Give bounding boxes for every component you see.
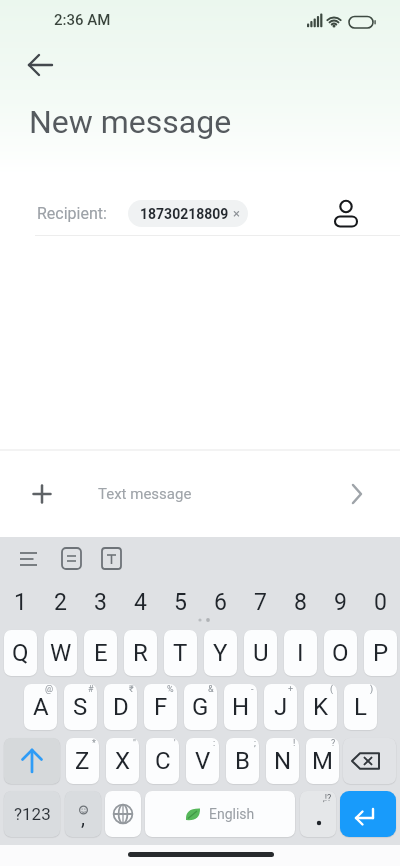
button[interactable]: Q <box>4 630 37 676</box>
button[interactable]: R <box>124 630 157 676</box>
button[interactable] <box>54 544 88 574</box>
button[interactable]: 9 <box>320 581 360 623</box>
button[interactable]: A <box>24 684 57 730</box>
button[interactable]: T <box>164 630 197 676</box>
staticText: @ <box>45 684 54 695</box>
button[interactable]: 2 <box>40 581 80 623</box>
staticText: R <box>133 639 148 667</box>
button[interactable]: M <box>306 738 339 784</box>
button[interactable]: W <box>44 630 77 676</box>
button[interactable]: B <box>226 738 259 784</box>
button[interactable]: N <box>266 738 299 784</box>
staticText: D <box>113 693 129 721</box>
staticText: Recipient: <box>37 204 107 223</box>
button[interactable]: V <box>186 738 219 784</box>
staticText: New message <box>29 103 232 141</box>
button[interactable]: I <box>284 630 317 676</box>
button[interactable]: ?123 <box>4 791 60 837</box>
button[interactable] <box>328 196 364 232</box>
staticText: S <box>73 693 88 721</box>
button[interactable]: K <box>304 684 337 730</box>
staticText: % <box>167 684 174 695</box>
button[interactable]: 8 <box>280 581 320 623</box>
staticText: 1 <box>14 589 27 616</box>
button[interactable]: 4 <box>120 581 160 623</box>
staticText: : <box>213 738 216 749</box>
staticText: ? <box>331 738 336 749</box>
button[interactable]: J <box>264 684 297 730</box>
button[interactable]: G <box>184 684 217 730</box>
staticText: T <box>173 639 188 667</box>
staticText: H <box>232 693 250 721</box>
staticText: * <box>92 738 96 749</box>
button[interactable] <box>105 791 141 837</box>
staticText: ?123 <box>14 804 51 824</box>
staticText: 18730218809 <box>140 206 229 222</box>
staticText: English <box>209 806 255 822</box>
button[interactable]: 1 <box>0 581 40 623</box>
staticText: G <box>192 693 209 721</box>
button[interactable]: O <box>324 630 357 676</box>
button[interactable]: , <box>65 791 101 837</box>
button[interactable]: Text message <box>90 478 330 510</box>
staticText: P <box>373 639 389 667</box>
button[interactable]: 5 <box>160 581 200 623</box>
button[interactable] <box>4 738 60 784</box>
button[interactable] <box>12 544 46 574</box>
staticText: J <box>274 693 288 721</box>
button[interactable]: P <box>364 630 397 676</box>
button[interactable] <box>343 738 396 784</box>
staticText: 9 <box>334 589 347 616</box>
button[interactable]: L <box>344 684 377 730</box>
staticText: × <box>233 206 240 221</box>
button[interactable]: Z <box>66 738 99 784</box>
staticText: L <box>354 693 367 721</box>
staticText: # <box>88 684 94 695</box>
staticText: F <box>154 693 168 721</box>
staticText: ₹ <box>129 684 134 695</box>
button[interactable]: 7 <box>240 581 280 623</box>
staticText: B <box>235 747 250 775</box>
button[interactable]: 3 <box>80 581 120 623</box>
staticText: , <box>81 806 85 829</box>
staticText: Text message <box>98 485 192 503</box>
button[interactable]: D <box>104 684 137 730</box>
button[interactable]: F <box>144 684 177 730</box>
button[interactable] <box>16 46 64 84</box>
staticText: U <box>253 639 269 667</box>
staticText: - <box>251 684 254 695</box>
staticText: 6 <box>214 589 227 616</box>
staticText: Z <box>75 747 90 775</box>
button[interactable] <box>94 544 128 574</box>
staticText: K <box>313 693 329 721</box>
staticText: E <box>94 639 108 667</box>
button[interactable]: E <box>84 630 117 676</box>
button[interactable]: English <box>145 791 295 837</box>
button[interactable]: 18730218809 <box>128 200 248 227</box>
button[interactable]: Y <box>204 630 237 676</box>
button[interactable]: 6 <box>200 581 240 623</box>
button[interactable]: X <box>106 738 139 784</box>
button[interactable] <box>340 791 396 837</box>
button[interactable]: C <box>146 738 179 784</box>
staticText: 2 <box>54 589 67 616</box>
staticText: 2:36 AM <box>54 11 111 29</box>
staticText: + <box>288 684 294 695</box>
staticText: O <box>332 639 349 667</box>
staticText: C <box>155 747 171 775</box>
button[interactable] <box>340 478 374 510</box>
staticText: 8 <box>294 589 307 616</box>
staticText: 0 <box>374 589 387 616</box>
button[interactable]: 0 <box>360 581 400 623</box>
button[interactable]: S <box>64 684 97 730</box>
button[interactable]: U <box>244 630 277 676</box>
staticText: W <box>50 639 72 667</box>
button[interactable]: H <box>224 684 257 730</box>
staticText: ! <box>293 738 296 749</box>
staticText: ; <box>254 738 256 749</box>
staticText: 3 <box>94 589 107 616</box>
button[interactable]: ,!? <box>300 791 336 837</box>
staticText: X <box>115 747 131 775</box>
staticText: 7 <box>254 589 267 616</box>
button[interactable] <box>26 478 58 510</box>
